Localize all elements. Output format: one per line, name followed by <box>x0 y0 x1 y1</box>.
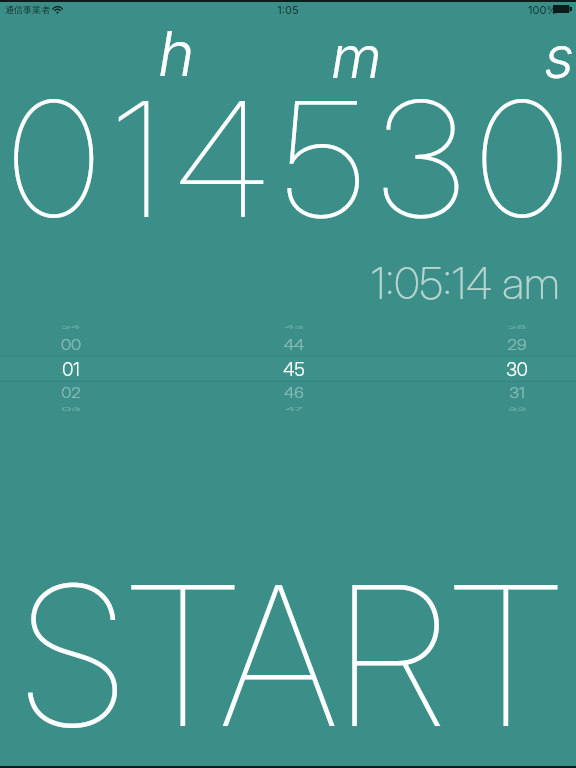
staticText: 通信事業者 <box>5 4 50 15</box>
staticText: m <box>331 22 382 92</box>
button[interactable]: Hours <box>7 310 135 430</box>
staticText: 1:05:14 am <box>0 256 560 309</box>
staticText: 02 <box>7 384 135 402</box>
staticText: 32 <box>453 406 576 412</box>
staticText: 46 <box>230 384 358 402</box>
staticText: 31 <box>453 384 576 402</box>
button[interactable]: Seconds <box>453 310 576 430</box>
staticText: START <box>3 538 576 768</box>
staticText: 1:05 <box>0 3 576 16</box>
staticText: 100% <box>528 3 558 16</box>
staticText: 01 <box>7 358 135 380</box>
staticText: 24 <box>7 325 135 330</box>
staticText: 43 <box>230 325 358 330</box>
staticText: 014530 <box>7 62 576 256</box>
staticText: 03 <box>7 406 135 412</box>
staticText: 28 <box>453 325 576 330</box>
button[interactable]: Minutes <box>230 310 358 430</box>
staticText: 30 <box>453 358 576 380</box>
staticText: 00 <box>7 336 135 354</box>
other: Wi-Fi signal <box>52 5 63 14</box>
button[interactable]: START <box>0 440 576 768</box>
staticText: s <box>544 22 574 92</box>
staticText: 44 <box>230 336 358 354</box>
other: Battery full <box>553 5 572 13</box>
staticText: 47 <box>230 406 358 412</box>
staticText: 29 <box>453 336 576 354</box>
staticText: 45 <box>230 358 358 380</box>
staticText: h <box>158 16 195 91</box>
